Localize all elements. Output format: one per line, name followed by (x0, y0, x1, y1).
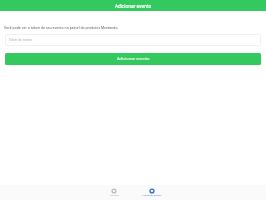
other: Eventos (111, 188, 117, 194)
other: Adicionar evento (149, 188, 155, 194)
staticText: Você pode ver o token do seu evento no p… (4, 25, 119, 30)
button[interactable]: Eventos (95, 185, 133, 200)
staticText: Token do evento (9, 38, 33, 42)
button[interactable]: Token do evento (5, 34, 261, 46)
staticText: Adicionar evento (115, 3, 152, 9)
staticText: Adicionar evento (142, 193, 162, 196)
button[interactable]: Adicionar evento (0, 0, 266, 11)
staticText: Adicionar evento (117, 56, 150, 62)
button[interactable]: Adicionar evento (5, 53, 261, 65)
staticText: Eventos (110, 193, 119, 196)
button[interactable]: Adicionar evento (133, 185, 171, 200)
